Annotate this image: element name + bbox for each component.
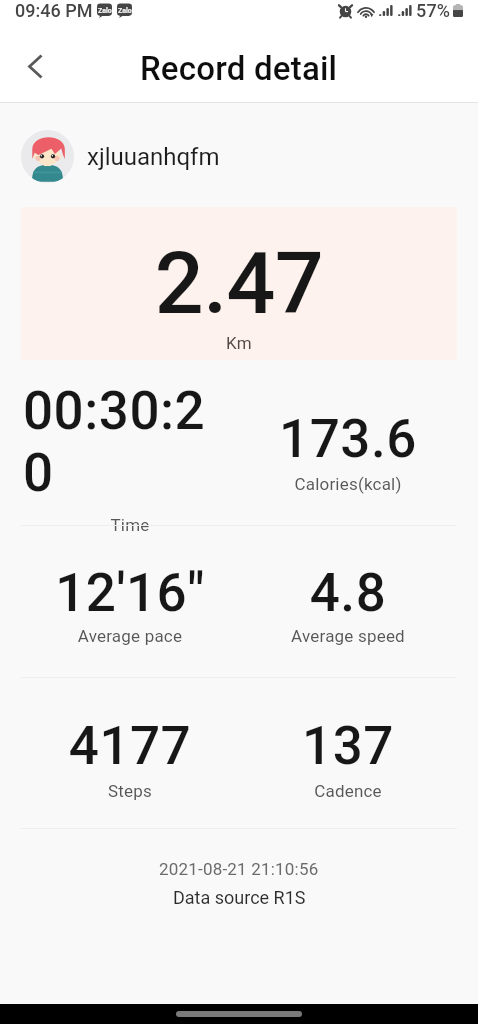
- staticText: 2.47: [21, 233, 457, 334]
- staticText: Zalo: [98, 7, 112, 15]
- staticText: 00:30:20: [23, 380, 223, 504]
- staticText: Km: [21, 333, 457, 353]
- staticText: Steps: [21, 781, 239, 801]
- staticText: xjluuanhqfm: [87, 143, 220, 171]
- staticText: 4177: [21, 715, 239, 777]
- button[interactable]: Back: [13, 43, 59, 89]
- staticText: Cadence: [239, 781, 457, 801]
- staticText: 173.6: [239, 408, 457, 470]
- button[interactable]: Home: [176, 1011, 302, 1017]
- staticText: Record detail: [140, 49, 338, 88]
- staticText: Calories(kcal): [239, 474, 457, 494]
- staticText: Zalo: [118, 7, 132, 15]
- staticText: 2021-08-21 21:10:56: [159, 859, 319, 879]
- staticText: 57%: [416, 0, 451, 21]
- staticText: Data source R1S: [173, 887, 306, 908]
- staticText: Time: [21, 515, 239, 535]
- staticText: 137: [239, 715, 457, 777]
- button[interactable]: xjluuanhqfm: [21, 130, 457, 183]
- staticText: 4.8: [239, 562, 457, 624]
- staticText: Average pace: [21, 626, 239, 646]
- staticText: 12'16": [21, 562, 239, 624]
- staticText: 09:46 PM: [15, 0, 93, 21]
- staticText: Average speed: [239, 626, 457, 646]
